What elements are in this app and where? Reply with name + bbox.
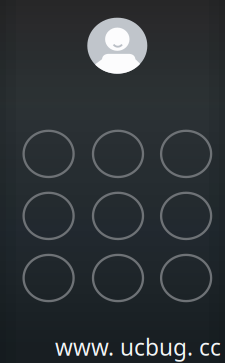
button[interactable]: Pattern dot 4 [24,193,74,239]
button[interactable]: Pattern dot 1 [24,131,74,177]
button[interactable]: Pattern dot 6 [161,193,211,239]
staticText: www. ucbug. cc [55,332,221,362]
button[interactable]: Pattern dot 8 [93,255,143,301]
button[interactable]: Pattern dot 2 [93,131,143,177]
button[interactable]: Pattern dot 3 [161,131,211,177]
button[interactable]: Pattern dot 7 [24,255,74,301]
button[interactable]: Pattern dot 9 [161,255,211,301]
button[interactable]: Pattern dot 5 [93,193,143,239]
